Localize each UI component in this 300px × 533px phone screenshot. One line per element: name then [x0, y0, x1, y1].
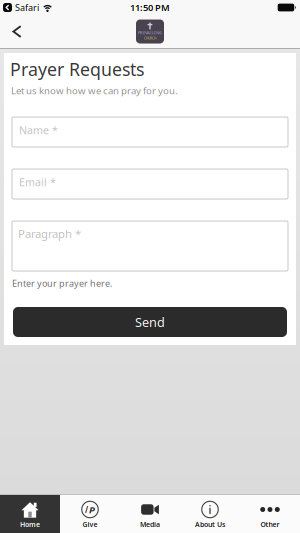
- staticText: Media: [140, 520, 160, 529]
- staticText: Safari: [15, 1, 39, 14]
- staticText: Send: [135, 313, 165, 331]
- button[interactable]: P: [60, 495, 120, 533]
- button[interactable]: Media: [120, 495, 180, 533]
- button[interactable]: Home: [0, 495, 60, 533]
- button[interactable]: Other: [240, 495, 300, 533]
- staticText: Home: [20, 520, 40, 529]
- staticText: Enter your prayer here.: [12, 277, 112, 289]
- staticText: About Us: [195, 520, 225, 529]
- staticText: Prayer Requests: [10, 57, 144, 81]
- button[interactable]: Paragraph *: [12, 221, 288, 271]
- staticText: Paragraph *: [18, 226, 81, 241]
- button[interactable]: The Prevailing Church: [136, 19, 164, 43]
- staticText: 11:50 PM: [130, 1, 170, 14]
- staticText: Let us know how we can pray for you.: [11, 84, 178, 97]
- button[interactable]: Send: [13, 307, 287, 337]
- staticText: CHURCH: [144, 36, 156, 40]
- button[interactable]: About Us: [180, 495, 240, 533]
- staticText: Give: [82, 520, 97, 529]
- button[interactable]: Back: [0, 17, 22, 46]
- staticText: PREVAILING: [138, 30, 162, 35]
- staticText: P: [89, 503, 95, 516]
- button[interactable]: Name *: [12, 117, 288, 147]
- staticText: Other: [260, 520, 279, 529]
- button[interactable]: Email *: [12, 169, 288, 199]
- staticText: Name *: [19, 123, 58, 137]
- staticText: Email *: [19, 175, 56, 189]
